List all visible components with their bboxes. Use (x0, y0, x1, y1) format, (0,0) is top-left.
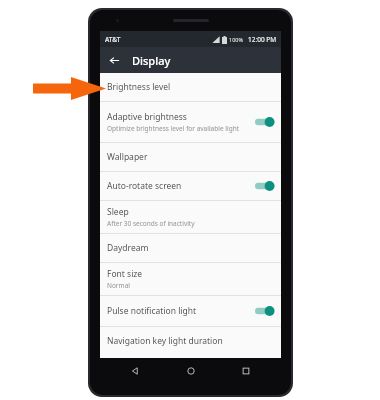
button[interactable]: Adaptive brightness (100, 102, 281, 142)
staticText: Daydream (107, 242, 149, 254)
staticText: After 30 seconds of inactivity (107, 219, 195, 228)
button[interactable]: Wallpaper (100, 143, 281, 171)
staticText: Wallpaper (107, 151, 148, 163)
staticText: Sleep (107, 206, 129, 218)
button[interactable]: Sleep (100, 201, 281, 233)
staticText: 12:00 PM (248, 35, 277, 44)
button[interactable]: Pulse notification light (100, 296, 281, 326)
staticText: Display (132, 53, 171, 68)
button[interactable]: Home (181, 361, 201, 381)
button[interactable]: Navigation key light duration (100, 327, 281, 355)
staticText: Navigation key light duration (107, 335, 223, 347)
button[interactable]: Auto-rotate screen (100, 172, 281, 200)
button[interactable]: Brightness level (100, 73, 281, 101)
button[interactable]: Recent apps (236, 361, 256, 381)
staticText: Pulse notification light (107, 305, 197, 317)
staticText: AT&T (105, 35, 121, 44)
staticText: Font size (107, 268, 143, 280)
staticText: 100% (229, 36, 244, 43)
staticText: Adaptive brightness (107, 111, 187, 123)
staticText: Normal (107, 281, 130, 290)
button[interactable]: Daydream (100, 234, 281, 262)
button[interactable]: Back (104, 50, 124, 70)
staticText: Auto-rotate screen (107, 180, 182, 192)
staticText: Optimize brightness level for available … (107, 124, 240, 133)
button[interactable]: Font size (100, 263, 281, 295)
button[interactable]: Back (125, 361, 145, 381)
staticText: Brightness level (107, 81, 171, 93)
